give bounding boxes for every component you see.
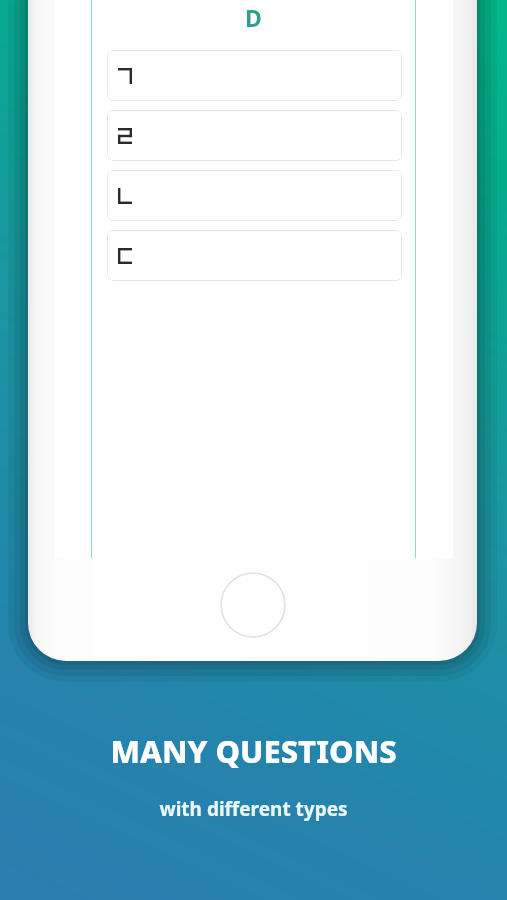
button[interactable]: Answer option xyxy=(107,110,402,161)
button[interactable]: Home xyxy=(220,572,286,638)
staticText: D xyxy=(245,2,262,33)
button[interactable]: Answer option xyxy=(107,170,402,221)
button[interactable]: Answer option xyxy=(107,230,402,281)
button[interactable]: Answer option xyxy=(107,50,402,101)
button[interactable]: with different types xyxy=(0,796,507,822)
staticText: MANY QUESTIONS xyxy=(110,730,397,772)
button[interactable]: MANY QUESTIONS xyxy=(0,730,507,772)
staticText: with different types xyxy=(159,796,348,822)
button[interactable]: D xyxy=(91,0,415,34)
